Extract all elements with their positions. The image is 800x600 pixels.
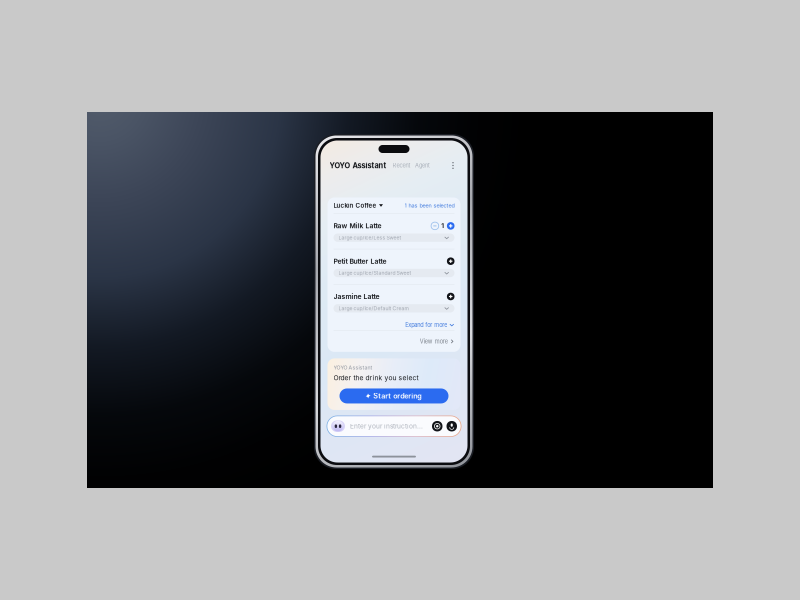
button[interactable]: Increase quantity [447, 222, 454, 230]
staticText: Large cup/Ice/Less Sweet [338, 235, 401, 241]
staticText: Agent [415, 162, 430, 169]
button[interactable]: Large cup/Ice/Less Sweet [333, 233, 454, 242]
button[interactable]: Add Petit Butter Latte [447, 257, 454, 265]
staticText: Large cup/Ice/Default Cream [338, 305, 408, 311]
staticText: Order the drink you select [333, 374, 418, 382]
button[interactable]: Capture [432, 421, 442, 431]
button[interactable]: More options [447, 159, 458, 172]
staticText: Enter your instruction... [350, 422, 423, 430]
button[interactable]: Agent [410, 162, 430, 169]
button[interactable]: Expand for more [405, 321, 454, 328]
staticText: 1 has been selected [404, 202, 454, 209]
staticText: Start ordering [373, 392, 422, 400]
staticText: Expand for more [405, 321, 447, 328]
button[interactable]: Luckin Coffee [333, 202, 383, 209]
button[interactable]: Large cup/Ice/Default Cream [333, 304, 454, 312]
button[interactable]: Voice input [446, 421, 457, 431]
staticText: YOYO Assistant [333, 364, 372, 371]
staticText: 1 [441, 222, 444, 230]
button[interactable]: Start ordering [339, 388, 448, 403]
staticText: Jasmine Latte [333, 292, 379, 301]
staticText: View more [420, 338, 448, 345]
button[interactable]: Decrease quantity [431, 222, 439, 230]
button[interactable]: View more [420, 338, 454, 345]
staticText: YOYO Assistant [329, 161, 386, 170]
staticText: Large cup/Ice/Standard Sweet [338, 270, 411, 276]
button[interactable]: Add Jasmine Latte [447, 293, 454, 300]
button[interactable]: Large cup/Ice/Standard Sweet [333, 269, 454, 277]
staticText: Petit Butter Latte [333, 257, 386, 265]
button[interactable]: Recent [386, 162, 410, 169]
staticText: Luckin Coffee [333, 202, 376, 209]
staticText: Recent [392, 162, 410, 169]
staticText: Raw Milk Latte [333, 222, 381, 230]
